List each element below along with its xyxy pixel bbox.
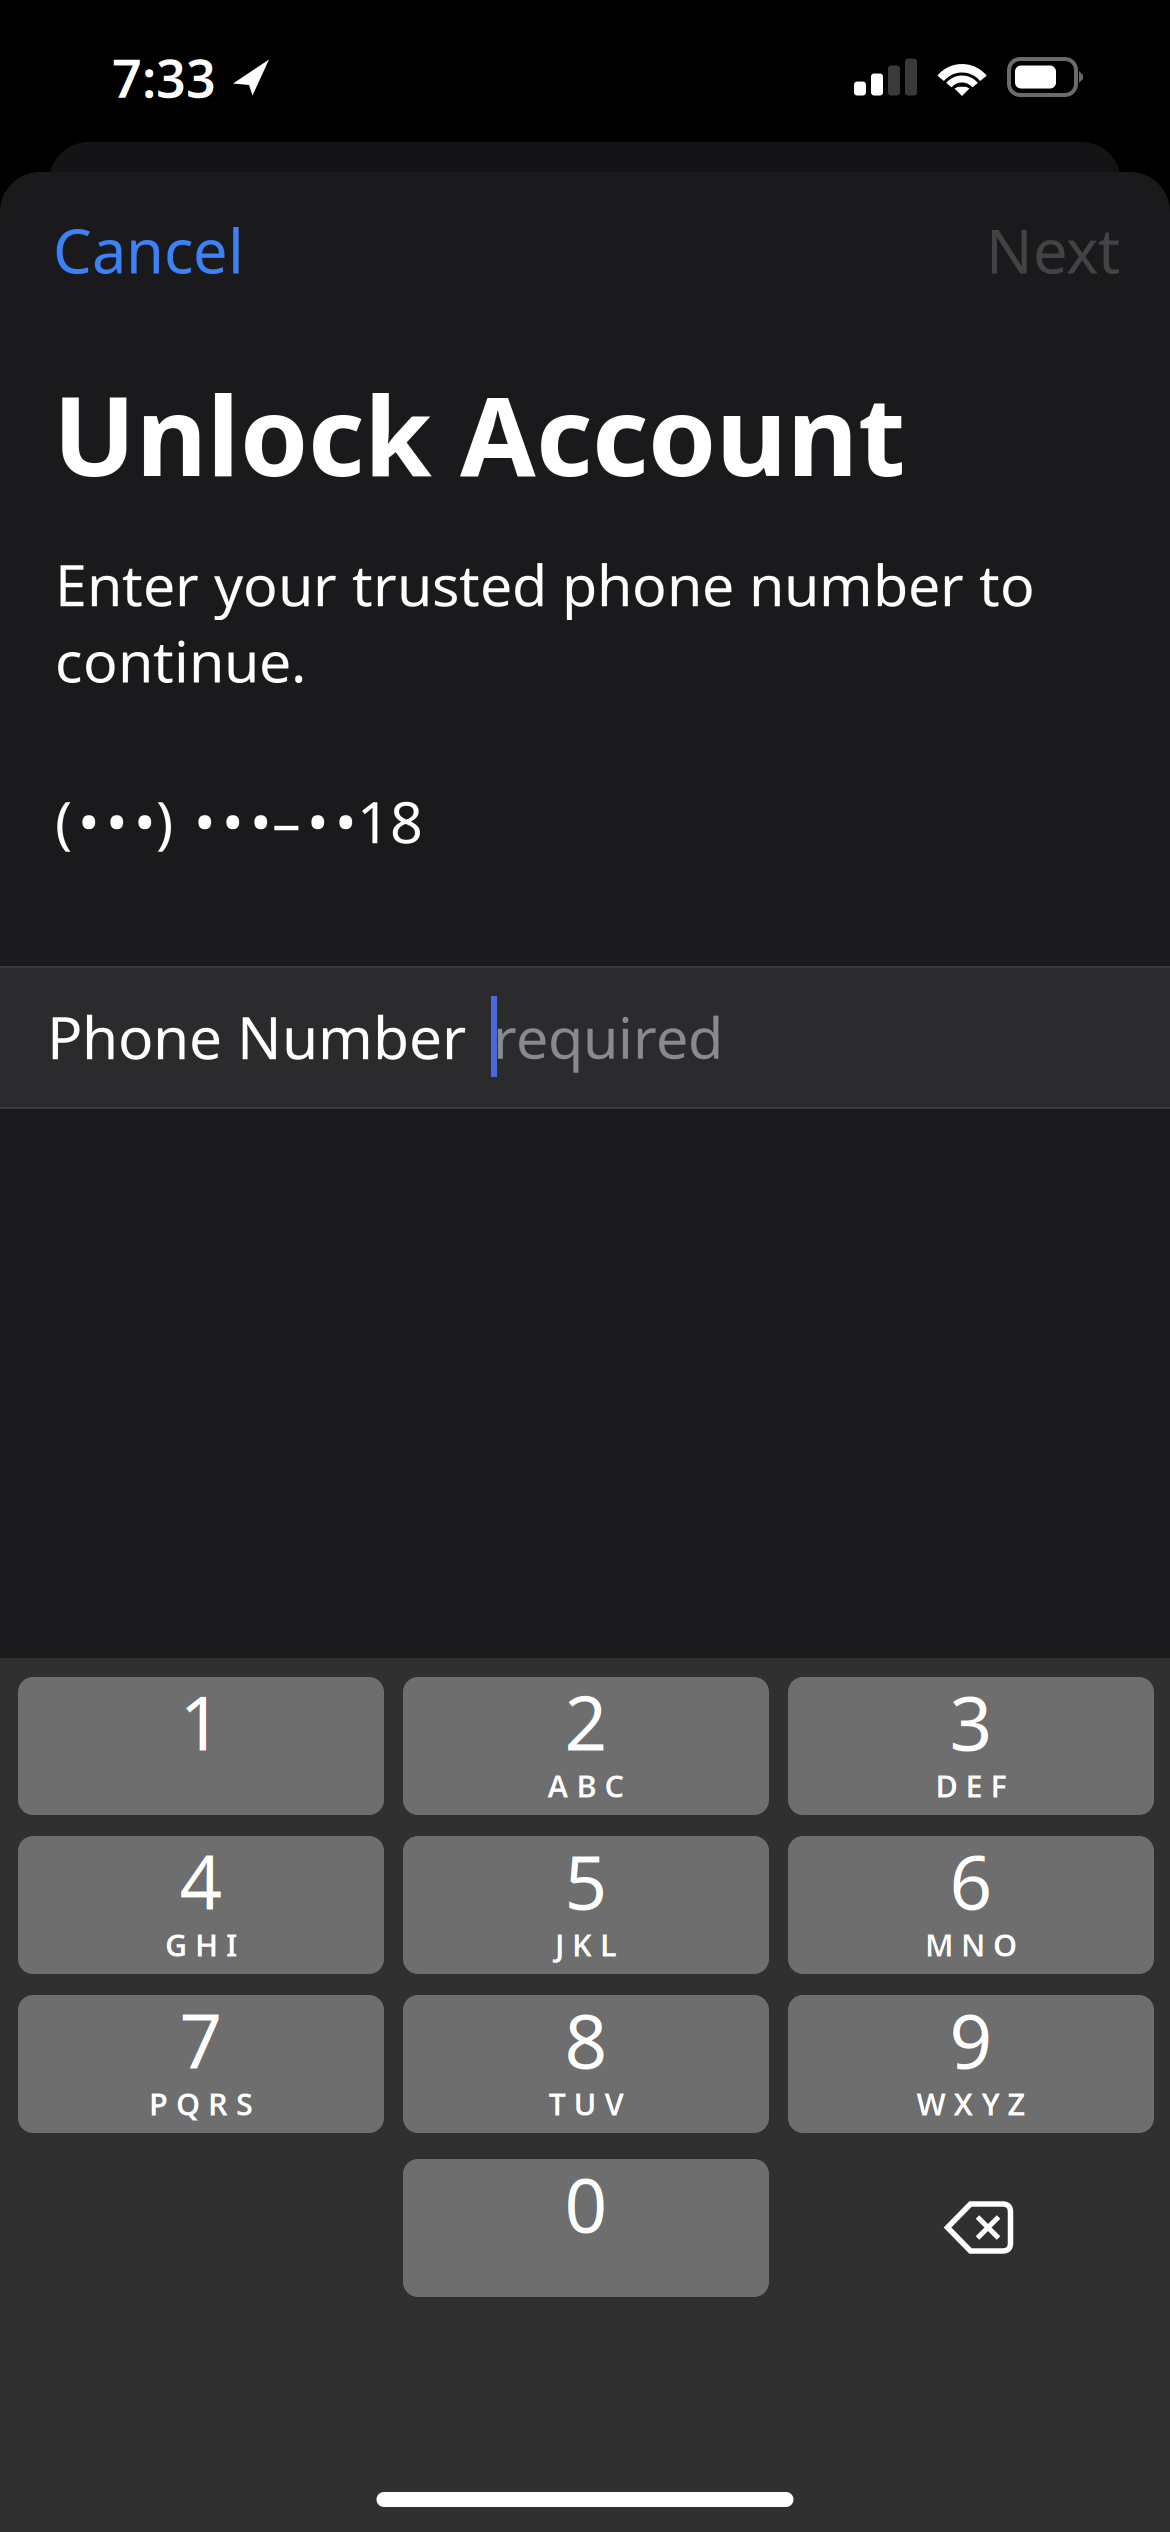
staticText: 2 <box>564 1672 607 1771</box>
button[interactable]: Phone Number <box>47 996 1147 1139</box>
button[interactable]: 9 <box>788 1995 1154 2133</box>
staticText: A B C <box>547 1765 624 1806</box>
button[interactable]: 5 <box>403 1836 769 1974</box>
button[interactable]: Delete <box>788 2159 1154 2297</box>
button[interactable]: 4 <box>18 1836 384 1974</box>
staticText: D E F <box>935 1765 1006 1806</box>
staticText: 1 <box>179 1672 222 1771</box>
staticText: 7:33 <box>112 43 216 112</box>
staticText: Cancel <box>53 209 244 290</box>
button[interactable]: 2 <box>403 1677 769 1815</box>
button[interactable]: 0 <box>403 2159 769 2297</box>
button[interactable]: 3 <box>788 1677 1154 1815</box>
staticText: Unlock Account <box>53 361 905 506</box>
staticText: 5 <box>564 1831 607 1930</box>
staticText: Enter your trusted phone number to conti… <box>55 546 1035 698</box>
staticText: Next <box>986 209 1120 290</box>
button[interactable]: 8 <box>403 1995 769 2133</box>
staticText: 7 <box>179 1990 222 2089</box>
staticText: required <box>493 998 723 1074</box>
staticText: ( • • •) • • •– • •18 <box>55 783 423 859</box>
button[interactable]: Cancel <box>43 191 254 308</box>
button[interactable]: 6 <box>788 1836 1154 1974</box>
staticText: G H I <box>165 1924 237 1965</box>
staticText: 3 <box>949 1672 992 1771</box>
staticText: M N O <box>925 1924 1017 1965</box>
staticText: W X Y Z <box>916 2083 1025 2124</box>
staticText: J K L <box>555 1924 617 1965</box>
staticText: T U V <box>548 2083 623 2124</box>
button[interactable]: 7 <box>18 1995 384 2133</box>
button[interactable]: Next <box>976 191 1130 308</box>
staticText: 0 <box>564 2154 607 2253</box>
button[interactable]: 1 <box>18 1677 384 1815</box>
staticText: 8 <box>564 1990 607 2089</box>
staticText: P Q R S <box>149 2083 253 2124</box>
staticText: 4 <box>179 1831 222 1930</box>
staticText: Phone Number <box>47 997 466 1075</box>
staticText: 9 <box>949 1990 992 2089</box>
staticText: 6 <box>949 1831 992 1930</box>
